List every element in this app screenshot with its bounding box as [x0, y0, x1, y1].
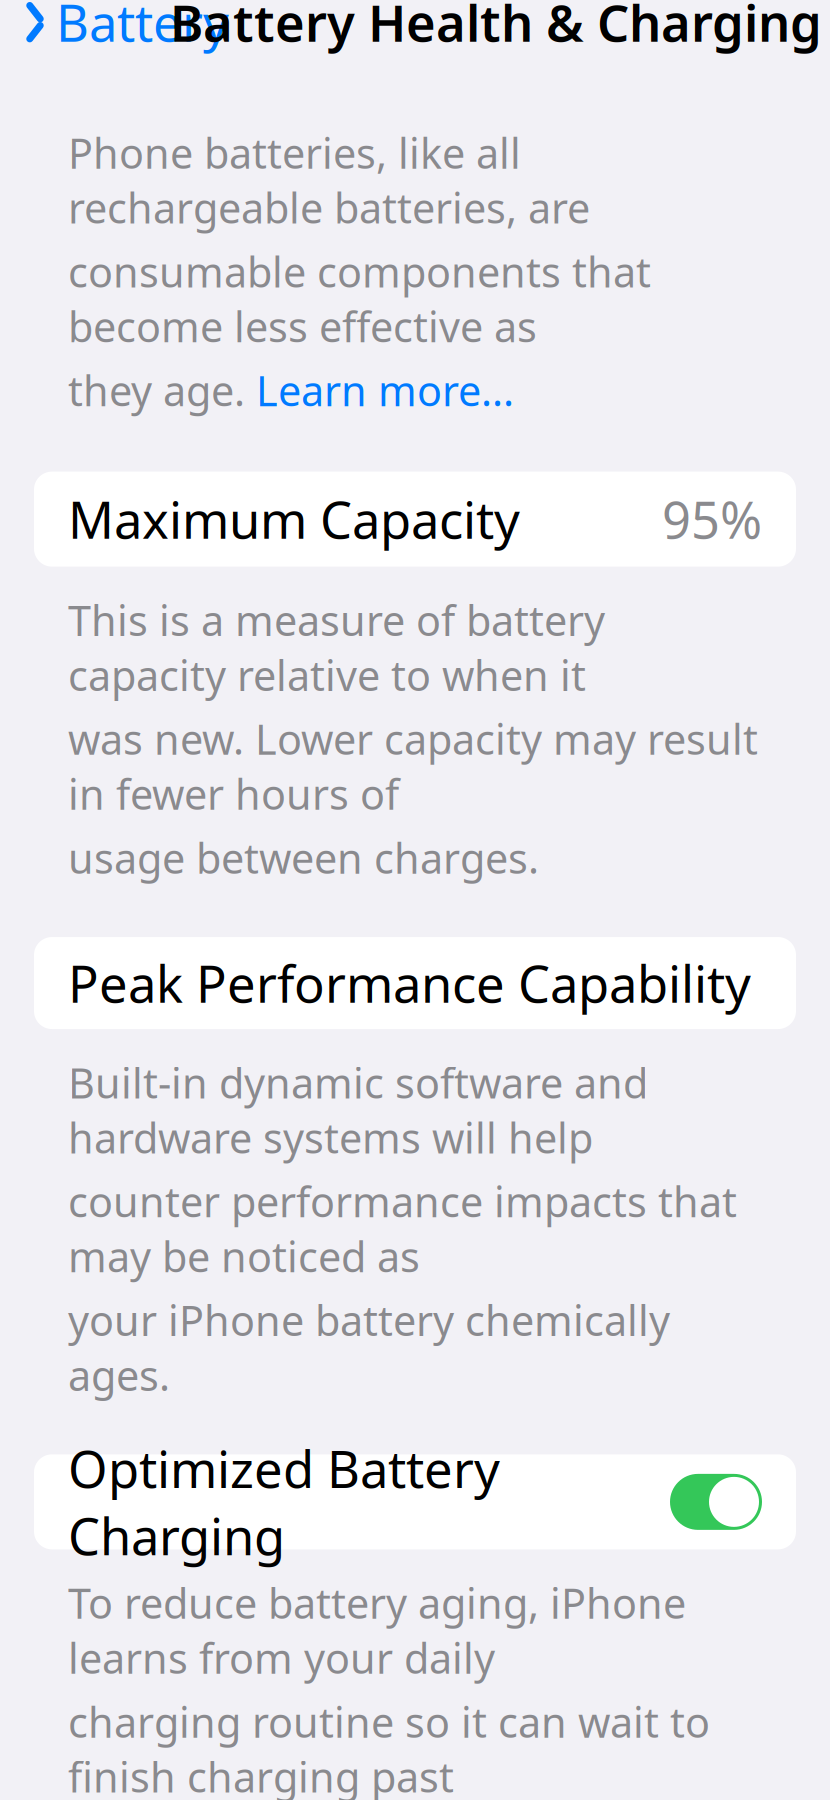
staticText: Phone batteries, like all rechargeable b… — [68, 125, 590, 235]
staticText: charging routine so it can wait to finis… — [68, 1694, 710, 1800]
staticText: Learn more... — [256, 363, 514, 418]
staticText: To reduce battery aging, iPhone learns f… — [68, 1575, 686, 1685]
button[interactable]: Maximum Capacity — [34, 472, 796, 567]
staticText: Battery Health & Charging — [170, 0, 822, 56]
staticText: Peak Performance Capability — [68, 949, 751, 1017]
button[interactable]: Learn more... — [256, 363, 514, 418]
staticText: consumable components that become less e… — [68, 244, 651, 354]
staticText: 95% — [662, 485, 762, 553]
button[interactable]: Battery — [18, 0, 235, 66]
staticText: they age. — [68, 363, 256, 418]
staticText: This is a measure of battery capacity re… — [68, 593, 605, 702]
staticText: counter performance impacts that may be … — [68, 1174, 737, 1284]
staticText: Optimized Battery Charging — [68, 1435, 500, 1569]
staticText: was new. Lower capacity may result in fe… — [68, 711, 758, 821]
staticText: Battery — [56, 0, 229, 56]
staticText: Maximum Capacity — [68, 485, 520, 553]
button[interactable]: Peak Performance Capability — [34, 937, 796, 1029]
staticText: your iPhone battery chemically ages. — [68, 1293, 670, 1402]
button[interactable]: Optimized Battery Charging — [34, 1454, 796, 1549]
staticText: Built-in dynamic software and hardware s… — [68, 1055, 648, 1165]
staticText: usage between charges. — [68, 830, 539, 885]
